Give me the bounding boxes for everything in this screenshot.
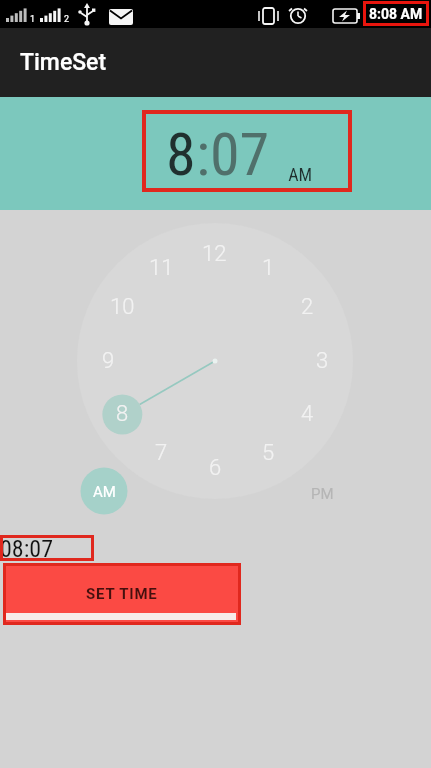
staticText: PM (311, 485, 334, 503)
staticText: 7 (155, 440, 168, 466)
staticText: 8 (116, 401, 129, 427)
staticText: 8:08 AM (369, 6, 423, 22)
staticText: 08:07 (0, 535, 53, 561)
button[interactable]: AM (81, 468, 128, 515)
staticText: 12 (202, 241, 227, 267)
staticText: 4 (301, 401, 314, 427)
button[interactable]: SET TIME (3, 563, 241, 625)
staticText: :07 (196, 119, 270, 189)
staticText: 1 (262, 255, 275, 281)
staticText: SET TIME (86, 585, 158, 603)
staticText: 5 (262, 440, 275, 466)
staticText: 3 (316, 348, 329, 374)
staticText: 9 (102, 348, 115, 374)
staticText: 1 (30, 14, 36, 25)
button[interactable]: PM (299, 470, 346, 517)
staticText: AM (93, 483, 116, 501)
staticText: 8 (166, 119, 196, 189)
staticText: 6 (209, 455, 222, 481)
button[interactable] (142, 110, 352, 192)
staticText: TimeSet (20, 49, 107, 76)
button[interactable] (0, 535, 94, 561)
staticText: 2 (301, 294, 314, 320)
button[interactable]: TimeSet (0, 28, 431, 97)
staticText: 11 (149, 255, 174, 281)
staticText: 2 (64, 14, 70, 25)
staticText: AM (284, 164, 313, 185)
staticText: 10 (110, 294, 135, 320)
